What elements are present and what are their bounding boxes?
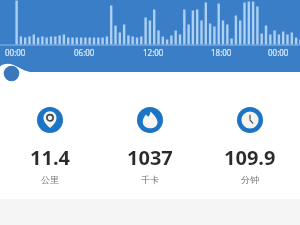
- other: Distance: [37, 107, 63, 133]
- staticText: 06:00: [74, 47, 95, 58]
- staticText: 分钟: [241, 174, 259, 185]
- button[interactable]: Distance: [24, 107, 76, 185]
- staticText: 千卡: [141, 174, 159, 185]
- staticText: 18:00: [211, 47, 232, 58]
- staticText: 公里: [41, 174, 59, 185]
- staticText: 109.9: [224, 144, 276, 171]
- button[interactable]: Scrub handle: [0, 0, 300, 95]
- staticText: 00:00: [268, 47, 289, 58]
- staticText: 12:00: [143, 47, 164, 58]
- staticText: 00:00: [5, 47, 26, 58]
- staticText: 1037: [127, 144, 173, 171]
- button[interactable]: Duration: [218, 107, 282, 185]
- other: Calories: [137, 107, 163, 133]
- other: Duration: [237, 107, 263, 133]
- button[interactable]: Calories: [121, 107, 179, 185]
- staticText: 11.4: [30, 144, 70, 171]
